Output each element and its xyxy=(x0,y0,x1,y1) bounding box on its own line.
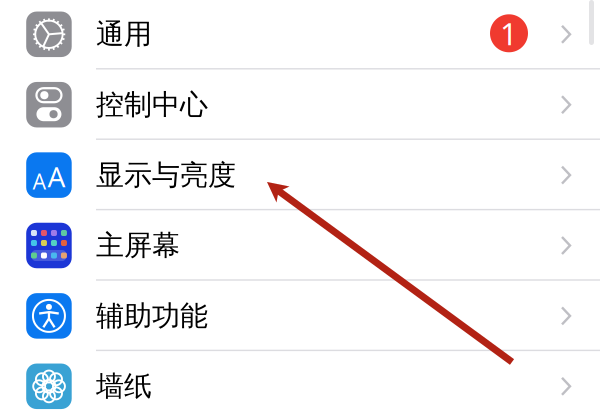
staticText: 墙纸 xyxy=(96,369,152,403)
staticText: 通用 xyxy=(96,17,152,51)
staticText: 控制中心 xyxy=(96,87,208,122)
button[interactable]: 辅助功能 xyxy=(0,281,600,351)
staticText: 显示与亮度 xyxy=(96,158,236,192)
button[interactable]: 通用 xyxy=(0,0,600,69)
staticText: A xyxy=(47,158,65,195)
staticText: 辅助功能 xyxy=(96,299,208,333)
button[interactable]: 墙纸 xyxy=(0,351,600,418)
button[interactable]: 控制中心 xyxy=(0,69,600,140)
staticText: 主屏幕 xyxy=(96,228,180,263)
staticText: A xyxy=(32,167,46,195)
staticText: 1 xyxy=(500,13,518,54)
button[interactable]: 主屏幕 xyxy=(0,210,600,281)
button[interactable]: A xyxy=(0,140,600,210)
